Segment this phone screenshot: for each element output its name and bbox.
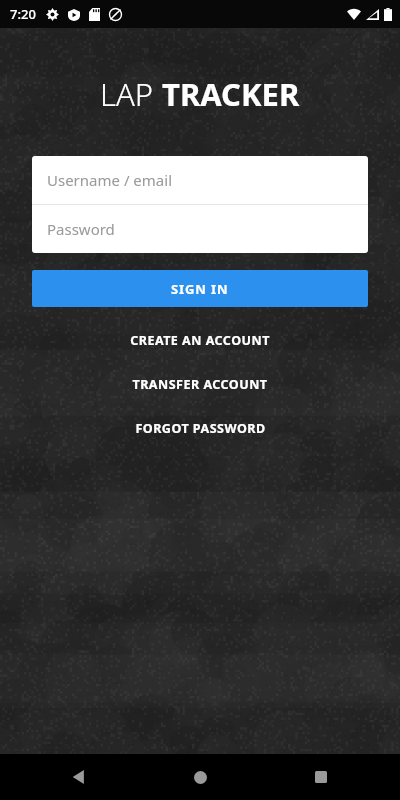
staticText: TRANSFER ACCOUNT (132, 376, 268, 393)
button[interactable]: FORGOT PASSWORD (0, 417, 400, 439)
staticText: Username / email (47, 170, 172, 190)
staticText: Password (47, 219, 115, 239)
button[interactable]: Back (62, 760, 96, 794)
staticText: LAP (100, 73, 162, 115)
button[interactable]: Password (32, 205, 368, 253)
button[interactable]: CREATE AN ACCOUNT (0, 329, 400, 351)
staticText: FORGOT PASSWORD (135, 420, 266, 437)
button[interactable]: Recent apps (304, 760, 338, 794)
button[interactable]: SIGN IN (32, 270, 368, 307)
staticText: CREATE AN ACCOUNT (130, 332, 270, 349)
staticText: TRACKER (162, 73, 300, 115)
button[interactable]: TRANSFER ACCOUNT (0, 373, 400, 395)
staticText: SIGN IN (171, 280, 229, 298)
button[interactable]: Home (183, 760, 217, 794)
staticText: 7:20 (10, 5, 36, 23)
button[interactable]: Username / email (32, 156, 368, 204)
